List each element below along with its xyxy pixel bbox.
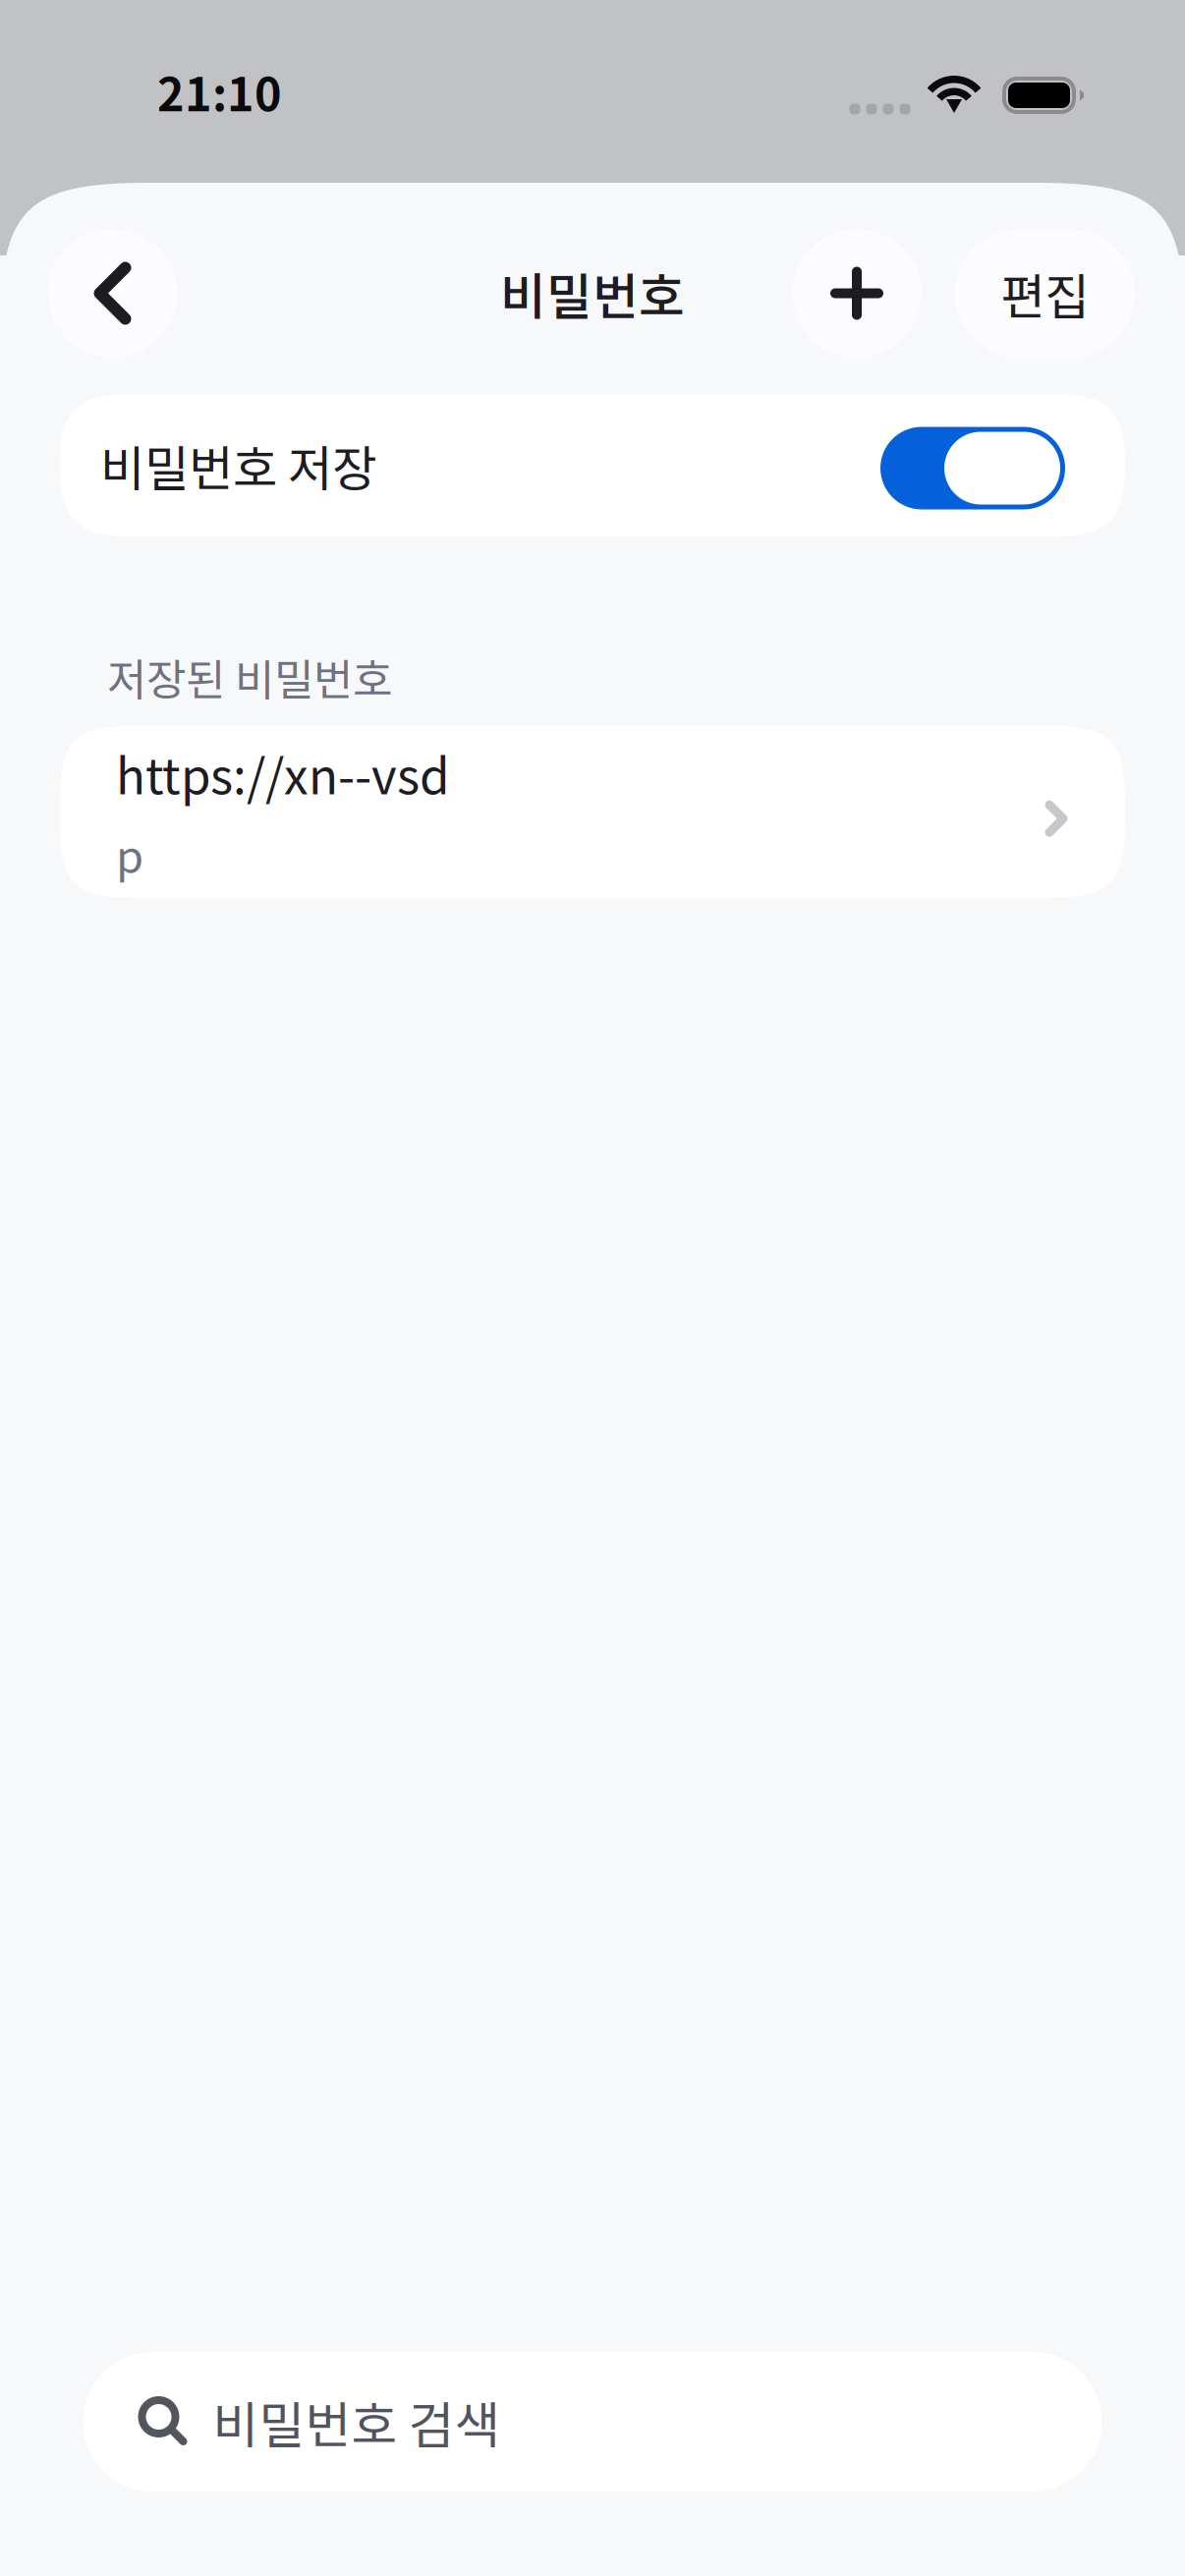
staticText: 저장된 비밀번호	[107, 645, 392, 708]
staticText: 21:10	[157, 58, 282, 125]
button[interactable]: 비밀번호 검색	[83, 2352, 1102, 2492]
staticText: 편집	[1001, 258, 1089, 328]
button[interactable]: Add password	[791, 229, 923, 358]
staticText: p	[116, 821, 143, 885]
staticText: 비밀번호 검색	[213, 2386, 501, 2458]
staticText: https://xn--vsd	[116, 738, 450, 808]
button[interactable]: 비밀번호 저장	[60, 394, 1125, 536]
button[interactable]: https://xn--vsd	[60, 726, 1125, 898]
button[interactable]: 편집	[955, 229, 1135, 358]
staticText: 비밀번호 저장	[100, 430, 376, 500]
button[interactable]: Back	[48, 229, 177, 358]
staticText: 비밀번호	[500, 257, 685, 329]
